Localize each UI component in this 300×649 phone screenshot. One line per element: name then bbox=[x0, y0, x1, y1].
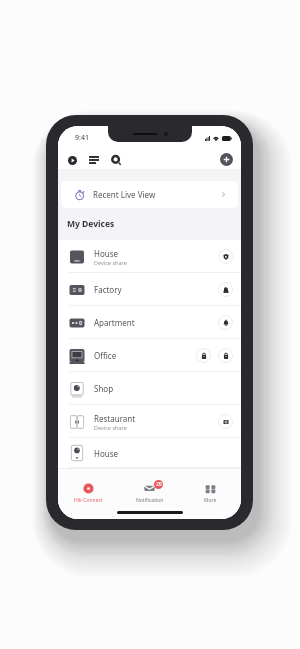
staticText: Notification bbox=[136, 497, 164, 503]
staticText: House bbox=[94, 448, 119, 459]
button[interactable]: shield bbox=[218, 249, 233, 264]
staticText: My Devices bbox=[67, 218, 115, 230]
button[interactable]: Recent Live View bbox=[61, 181, 238, 208]
button[interactable]: House bbox=[58, 240, 241, 273]
button[interactable]: Factory bbox=[58, 273, 241, 306]
staticText: Factory bbox=[94, 284, 122, 295]
button[interactable]: Add device bbox=[220, 153, 233, 166]
staticText: Hik-Connect bbox=[74, 497, 103, 503]
staticText: Recent Live View bbox=[93, 189, 156, 200]
staticText: Device share bbox=[94, 424, 127, 431]
button[interactable]: Office bbox=[58, 339, 241, 372]
staticText: Device share bbox=[94, 259, 127, 266]
button[interactable]: Live view bbox=[65, 153, 79, 167]
button[interactable]: Restaurant bbox=[58, 405, 241, 438]
button[interactable]: Hik-Connect bbox=[58, 483, 119, 503]
staticText: Restaurant bbox=[94, 413, 136, 424]
staticText: More bbox=[204, 497, 217, 503]
staticText: Apartment bbox=[94, 317, 135, 328]
button[interactable]: Shop bbox=[58, 372, 241, 405]
staticText: 9:41 bbox=[75, 133, 89, 143]
button[interactable]: House bbox=[58, 438, 241, 468]
button[interactable]: Search bbox=[109, 153, 123, 167]
staticText: Shop bbox=[94, 383, 114, 394]
button[interactable]: More bbox=[180, 483, 241, 503]
button[interactable]: 20 bbox=[119, 483, 180, 503]
button[interactable]: Device list bbox=[87, 153, 101, 167]
button[interactable]: lock bbox=[196, 348, 211, 363]
staticText: House bbox=[94, 248, 119, 259]
button[interactable]: grid bbox=[218, 414, 233, 429]
button[interactable]: lock bbox=[218, 348, 233, 363]
staticText: 20 bbox=[156, 481, 162, 488]
button[interactable]: camera bbox=[218, 282, 233, 297]
button[interactable]: bell bbox=[218, 315, 233, 330]
staticText: Office bbox=[94, 350, 117, 361]
button[interactable]: Apartment bbox=[58, 306, 241, 339]
